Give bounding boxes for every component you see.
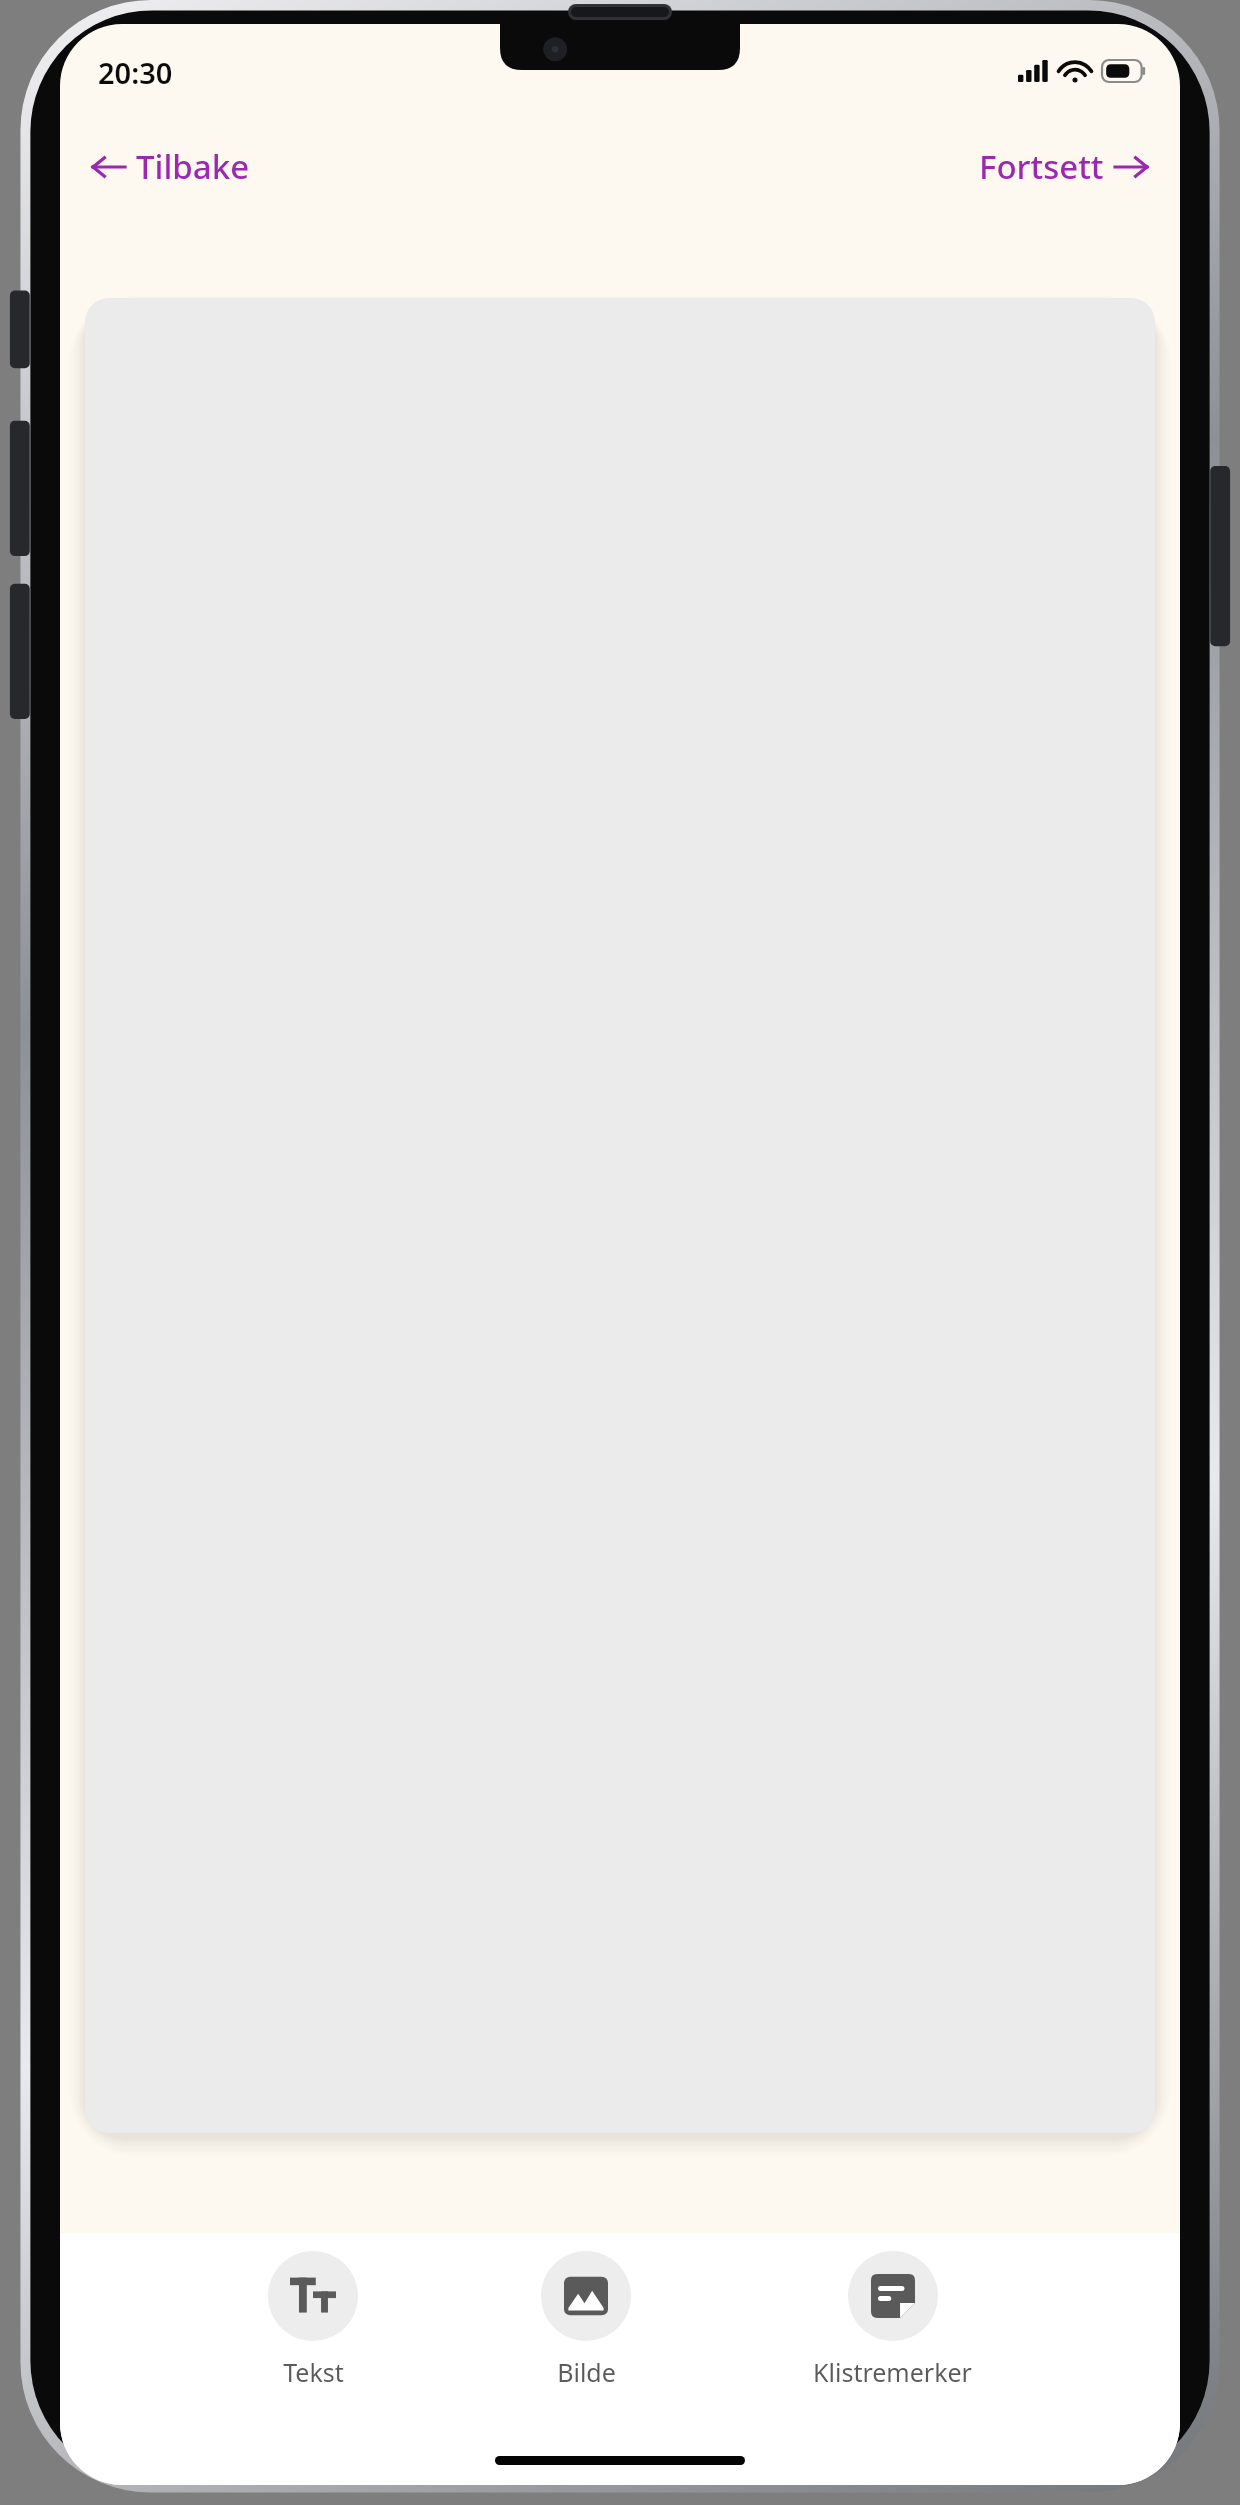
staticText: Tilbake	[136, 144, 250, 189]
button[interactable]: Fortsett	[965, 134, 1164, 199]
staticText: Bilde	[557, 2355, 616, 2389]
staticText: 20:30	[98, 53, 173, 92]
other: Bilde	[564, 2274, 608, 2318]
button[interactable]: Tilbake	[76, 134, 264, 199]
other: Tekst	[290, 2273, 336, 2319]
staticText: Klistremerker	[813, 2355, 972, 2389]
button[interactable]: Klistremerker	[805, 2247, 980, 2393]
staticText: Fortsett	[979, 144, 1104, 189]
other: Fortsett	[1112, 148, 1150, 186]
button[interactable]: Tekst	[260, 2247, 366, 2393]
staticText: Tekst	[283, 2355, 344, 2389]
other: Klistremerker	[871, 2274, 915, 2318]
other: Tilbake	[90, 148, 128, 186]
button[interactable]: Bilde	[533, 2247, 639, 2393]
